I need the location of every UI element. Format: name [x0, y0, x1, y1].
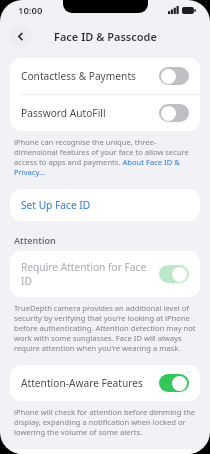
button[interactable]: Back: [9, 25, 32, 48]
staticText: TrueDepth camera provides an additional …: [14, 303, 196, 353]
button[interactable]: [159, 104, 189, 122]
staticText: Require Attention for Face ID: [21, 260, 159, 288]
staticText: iPhone can recognise the unique, three-d…: [14, 137, 196, 177]
staticText: Face ID & Passcode: [54, 29, 157, 44]
button[interactable]: Attention-Aware Features: [10, 365, 200, 401]
staticText: Password AutoFill: [21, 106, 159, 120]
staticText: Contactless & Payments: [21, 69, 159, 83]
button[interactable]: Stolen Device Protection: [10, 449, 200, 454]
button[interactable]: Password AutoFill: [10, 95, 200, 131]
staticText: 10:00: [18, 4, 43, 17]
button[interactable]: [159, 265, 189, 283]
button[interactable]: Contactless & Payments: [10, 58, 200, 94]
button[interactable]: [159, 374, 189, 392]
button[interactable]: Require Attention for Face ID: [10, 251, 200, 297]
button[interactable]: Set Up Face ID: [10, 189, 200, 221]
button[interactable]: [159, 67, 189, 85]
staticText: iPhone will check for attention before d…: [14, 407, 196, 437]
staticText: Attention-Aware Features: [21, 376, 159, 390]
staticText: Set Up Face ID: [21, 198, 91, 212]
staticText: Attention: [14, 234, 56, 246]
